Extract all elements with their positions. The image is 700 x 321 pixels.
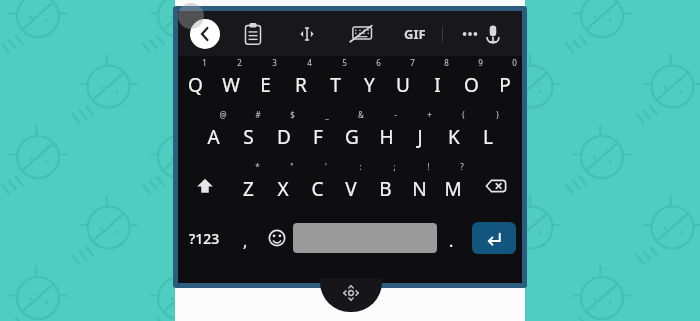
staticText: _ (325, 109, 329, 120)
staticText: Q (188, 72, 203, 98)
button[interactable]: Shift (178, 160, 231, 212)
staticText: & (358, 109, 364, 120)
staticText: $ (290, 109, 295, 120)
button[interactable]: More options (455, 19, 485, 49)
staticText: 6 (376, 57, 381, 68)
staticText: 2 (237, 57, 242, 68)
staticText: B (379, 176, 392, 202)
button[interactable]: Enter (472, 222, 516, 254)
button[interactable]: F (301, 108, 335, 160)
button[interactable]: Emoji (260, 212, 293, 264)
button[interactable]: Space (293, 223, 437, 253)
staticText: F (313, 124, 323, 150)
button[interactable]: D (266, 108, 301, 160)
staticText: J (417, 124, 423, 150)
staticText: O (464, 72, 479, 98)
staticText: " (290, 161, 294, 172)
staticText: 1 (202, 57, 207, 68)
staticText: C (311, 176, 324, 202)
button[interactable]: GIF (400, 19, 430, 49)
button[interactable]: N (402, 160, 436, 212)
staticText: P (499, 72, 511, 98)
staticText: 8 (444, 57, 449, 68)
button[interactable]: P (488, 56, 522, 108)
staticText: , (243, 230, 248, 252)
button[interactable]: Hide keyboard (346, 19, 376, 49)
button[interactable]: Voice input (478, 19, 508, 49)
staticText: X (277, 176, 289, 202)
button[interactable]: Y (352, 56, 386, 108)
button[interactable]: , (231, 212, 260, 264)
staticText: * (255, 161, 260, 172)
staticText: 5 (342, 57, 347, 68)
staticText: 0 (512, 57, 517, 68)
staticText: Y (364, 72, 375, 98)
button[interactable]: R (283, 56, 318, 108)
staticText: E (260, 72, 271, 98)
staticText: R (295, 72, 307, 98)
staticText: D (277, 124, 291, 150)
staticText: ?123 (189, 229, 220, 248)
staticText: I (434, 72, 441, 98)
staticText: + (427, 109, 432, 120)
staticText: ! (427, 161, 430, 172)
staticText: ? (460, 161, 464, 172)
button[interactable]: B (368, 160, 402, 212)
staticText: ( (462, 109, 465, 120)
staticText: G (345, 124, 359, 150)
button[interactable]: Backspace (470, 160, 522, 212)
staticText: Z (243, 176, 254, 202)
button[interactable]: K (437, 108, 471, 160)
staticText: 9 (478, 57, 483, 68)
staticText: 7 (410, 57, 415, 68)
staticText: M (444, 176, 462, 202)
staticText: T (330, 72, 341, 98)
staticText: @ (219, 109, 227, 120)
staticText: W (222, 72, 240, 98)
button[interactable]: G (335, 108, 369, 160)
staticText: L (483, 124, 493, 150)
staticText: - (394, 109, 397, 120)
button[interactable]: Back (190, 19, 220, 49)
button[interactable]: J (403, 108, 437, 160)
staticText: GIF (404, 25, 426, 43)
button[interactable]: I (420, 56, 454, 108)
staticText: H (379, 124, 394, 150)
button[interactable]: M (436, 160, 470, 212)
button[interactable]: W (213, 56, 248, 108)
staticText: ' (325, 161, 327, 172)
button[interactable]: V (334, 160, 368, 212)
button[interactable]: E (248, 56, 283, 108)
staticText: S (243, 124, 254, 150)
staticText: V (345, 176, 357, 202)
staticText: 4 (307, 57, 312, 68)
button[interactable]: L (471, 108, 505, 160)
button[interactable]: Move keyboard (320, 278, 382, 312)
button[interactable]: ?123 (178, 212, 231, 264)
button[interactable]: A (196, 108, 231, 160)
staticText: A (207, 124, 220, 150)
button[interactable]: O (454, 56, 488, 108)
button[interactable]: Q (178, 56, 213, 108)
button[interactable]: X (266, 160, 300, 212)
button[interactable]: Z (231, 160, 266, 212)
staticText: ) (496, 109, 499, 120)
staticText: . (449, 230, 454, 252)
button[interactable]: Text editing (292, 19, 322, 49)
button[interactable]: U (386, 56, 420, 108)
staticText: # (255, 109, 261, 120)
button[interactable]: Clipboard (238, 19, 268, 49)
button[interactable]: H (369, 108, 403, 160)
staticText: : (359, 161, 362, 172)
button[interactable]: S (231, 108, 266, 160)
button[interactable]: C (300, 160, 334, 212)
staticText: U (396, 72, 410, 98)
staticText: K (448, 124, 460, 150)
staticText: 3 (272, 57, 277, 68)
staticText: N (412, 176, 427, 202)
button[interactable]: T (318, 56, 352, 108)
staticText: ; (393, 161, 396, 172)
button[interactable]: . (437, 212, 466, 264)
